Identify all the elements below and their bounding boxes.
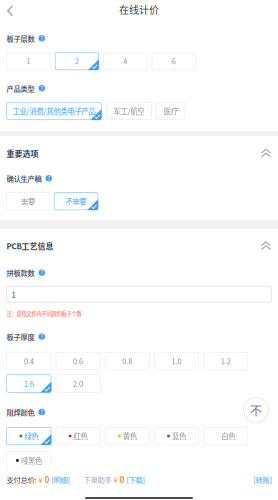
- staticText: 重要选项: [6, 147, 38, 159]
- staticText: ¥: [111, 474, 117, 485]
- button[interactable]: [下载]: [124, 474, 144, 485]
- staticText: 1.2: [221, 356, 231, 366]
- button[interactable]: 1.6: [6, 374, 51, 392]
- staticText: 不需要: [65, 196, 86, 206]
- staticText: 6: [172, 56, 176, 66]
- button[interactable]: 不需要: [54, 192, 98, 210]
- button[interactable]: 4: [103, 52, 147, 70]
- staticText: 支付总价:: [6, 474, 36, 485]
- staticText: 需要: [21, 196, 35, 206]
- staticText: ¥: [36, 474, 42, 485]
- button[interactable]: Collapse section: [257, 237, 275, 254]
- staticText: 2.0: [73, 378, 83, 389]
- button[interactable]: 0.4: [6, 352, 51, 370]
- button[interactable]: 2.0: [56, 374, 100, 392]
- staticText: 医疗: [164, 106, 178, 116]
- staticText: 红色: [74, 431, 88, 441]
- staticText: 0.8: [122, 356, 132, 366]
- staticText: 1.6: [24, 378, 34, 389]
- staticText: 1: [11, 289, 15, 300]
- button[interactable]: 1.2: [203, 352, 248, 370]
- button[interactable]: 黄色: [105, 427, 150, 445]
- staticText: [明细]: [49, 474, 69, 485]
- button[interactable]: 蓝色: [154, 427, 199, 445]
- staticText: 注：是指文件内不同款的板子个数: [6, 309, 81, 317]
- staticText: 哑黑色: [21, 455, 42, 466]
- button[interactable]: 军工/航空: [106, 102, 152, 120]
- staticText: 0.4: [24, 356, 34, 366]
- staticText: 不: [250, 401, 262, 419]
- staticText: 0: [42, 473, 49, 485]
- button[interactable]: 白色: [203, 427, 248, 445]
- staticText: [下载]: [124, 474, 144, 485]
- button[interactable]: 红色: [56, 427, 100, 445]
- staticText: 拼板款数: [6, 267, 34, 278]
- button[interactable]: 0.8: [105, 352, 150, 370]
- staticText: 产品类型: [6, 83, 34, 93]
- staticText: ?: [40, 84, 43, 93]
- staticText: ?: [47, 174, 50, 183]
- staticText: ?: [40, 408, 43, 416]
- staticText: 0.6: [73, 356, 83, 366]
- button[interactable]: [明细]: [49, 474, 69, 485]
- staticText: 4: [123, 56, 127, 66]
- staticText: 在线计价: [119, 2, 159, 17]
- staticText: 板子层数: [6, 33, 34, 44]
- staticText: 板子厚度: [6, 331, 34, 342]
- button[interactable]: [转账]: [253, 474, 271, 485]
- button[interactable]: 0.6: [56, 352, 100, 370]
- button[interactable]: Back to top: [243, 19, 278, 423]
- button[interactable]: 1: [6, 52, 50, 70]
- staticText: 白色: [221, 431, 235, 441]
- button[interactable]: 工业/消费/其他类电子产品: [6, 102, 101, 120]
- staticText: 黄色: [123, 431, 137, 441]
- button[interactable]: 哑黑色: [6, 451, 51, 469]
- staticText: 2: [75, 56, 79, 66]
- staticText: 阻焊颜色: [6, 407, 34, 417]
- button[interactable]: 1.0: [154, 352, 199, 370]
- button[interactable]: Collapse section: [257, 145, 275, 162]
- staticText: PCB工艺信息: [6, 240, 53, 252]
- staticText: [转账]: [253, 474, 271, 485]
- staticText: ?: [40, 332, 43, 341]
- button[interactable]: 6: [152, 52, 196, 70]
- staticText: 1.0: [171, 356, 181, 366]
- button[interactable]: 需要: [6, 192, 49, 210]
- staticText: 1: [26, 56, 30, 66]
- staticText: 确认生产稿: [6, 173, 41, 184]
- staticText: 工业/消费/其他类电子产品: [12, 106, 95, 116]
- staticText: ?: [40, 34, 43, 43]
- staticText: 0: [117, 473, 124, 485]
- button[interactable]: 绿色: [6, 427, 51, 445]
- staticText: 下单助手: [83, 474, 111, 485]
- staticText: 绿色: [24, 431, 38, 441]
- staticText: 蓝色: [172, 431, 186, 441]
- button[interactable]: Back: [0, 0, 19, 19]
- staticText: 军工/航空: [113, 106, 144, 116]
- button[interactable]: 2: [55, 52, 99, 70]
- staticText: ?: [40, 268, 43, 277]
- button[interactable]: 医疗: [156, 102, 185, 120]
